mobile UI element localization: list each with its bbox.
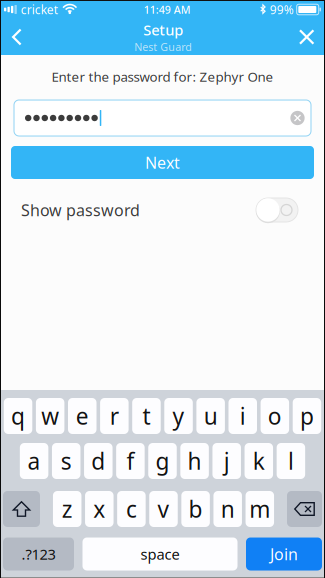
button[interactable]: r: [100, 398, 129, 434]
staticText: n: [221, 494, 235, 524]
button[interactable]: Show password: [256, 198, 298, 222]
button[interactable]: x: [85, 491, 114, 527]
button[interactable]: l: [277, 443, 305, 479]
staticText: b: [189, 494, 203, 524]
staticText: cricket: [21, 1, 58, 17]
staticText: x: [93, 494, 105, 524]
staticText: Show password: [21, 199, 140, 221]
button[interactable]: k: [244, 443, 273, 479]
staticText: e: [76, 401, 89, 431]
staticText: c: [126, 494, 137, 524]
button[interactable]: n: [213, 491, 242, 527]
button[interactable]: Shift: [3, 491, 40, 527]
button[interactable]: Join: [246, 537, 322, 570]
button[interactable]: t: [132, 398, 161, 434]
staticText: w: [41, 401, 59, 431]
staticText: Nest Guard: [134, 40, 192, 54]
button[interactable]: q: [4, 398, 32, 434]
staticText: Next: [145, 152, 180, 173]
staticText: h: [188, 446, 202, 476]
staticText: m: [249, 494, 270, 524]
staticText: .?123: [21, 544, 55, 564]
staticText: y: [173, 401, 185, 431]
button[interactable]: w: [36, 398, 64, 434]
button[interactable]: Back: [0, 19, 56, 55]
button[interactable]: a: [20, 443, 48, 479]
button[interactable]: m: [246, 491, 274, 527]
button[interactable]: y: [164, 398, 193, 434]
staticText: g: [155, 446, 169, 476]
button[interactable]: f: [116, 443, 145, 479]
button[interactable]: h: [180, 443, 209, 479]
staticText: 99%: [270, 1, 294, 17]
staticText: o: [268, 401, 282, 431]
staticText: space: [140, 544, 179, 564]
button[interactable]: c: [117, 491, 146, 527]
staticText: 11:49 AM: [144, 2, 191, 17]
staticText: s: [61, 446, 72, 476]
staticText: z: [62, 494, 73, 524]
button[interactable]: .?123: [3, 537, 74, 570]
button[interactable]: Delete: [287, 491, 322, 527]
staticText: j: [224, 446, 230, 476]
button[interactable]: j: [212, 443, 241, 479]
staticText: d: [91, 446, 105, 476]
button[interactable]: z: [53, 491, 81, 527]
staticText: k: [253, 446, 265, 476]
button[interactable]: Clear text: [287, 108, 307, 128]
button[interactable]: g: [148, 443, 177, 479]
staticText: u: [204, 401, 218, 431]
staticText: v: [157, 494, 169, 524]
staticText: f: [126, 446, 134, 476]
button[interactable]: i: [228, 398, 257, 434]
button[interactable]: s: [52, 443, 80, 479]
button[interactable]: e: [68, 398, 96, 434]
staticText: i: [240, 401, 246, 431]
button[interactable]: space: [82, 537, 237, 570]
staticText: r: [110, 401, 119, 431]
button[interactable]: p: [293, 398, 321, 434]
staticText: a: [28, 446, 41, 476]
staticText: Setup: [143, 20, 183, 40]
button[interactable]: v: [149, 491, 178, 527]
button[interactable]: o: [261, 398, 289, 434]
button[interactable]: u: [196, 398, 225, 434]
staticText: t: [142, 401, 150, 431]
staticText: q: [11, 401, 25, 431]
button[interactable]: Close: [270, 19, 325, 55]
staticText: l: [288, 446, 294, 476]
button[interactable]: d: [84, 443, 112, 479]
staticText: p: [300, 401, 314, 431]
staticText: Enter the password for: Zephyr One: [51, 68, 273, 85]
staticText: Join: [270, 543, 298, 565]
button[interactable]: Next: [0, 146, 325, 179]
button[interactable]: b: [181, 491, 210, 527]
